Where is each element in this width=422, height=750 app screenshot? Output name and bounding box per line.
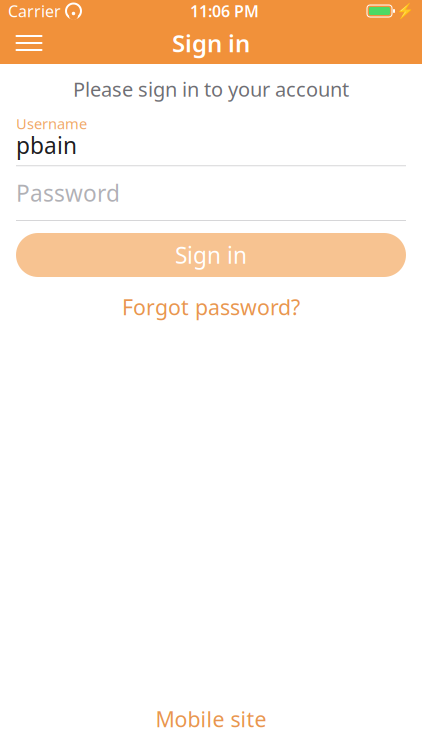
- button[interactable]: Forgot password?: [0, 287, 422, 327]
- staticText: Please sign in to your account: [73, 76, 349, 102]
- staticText: ⚡: [396, 3, 414, 19]
- staticText: Sign in: [172, 27, 250, 59]
- button[interactable]: Sign in: [16, 233, 406, 277]
- staticText: Mobile site: [155, 705, 266, 733]
- staticText: Username: [16, 114, 87, 133]
- button[interactable]: Menu: [7, 22, 51, 64]
- staticText: pbain: [16, 130, 77, 160]
- staticText: Sign in: [175, 240, 247, 270]
- staticText: 11:06 PM: [190, 0, 259, 22]
- button[interactable]: Mobile site: [0, 701, 422, 737]
- staticText: Carrier: [8, 0, 61, 22]
- staticText: Forgot password?: [122, 293, 300, 321]
- staticText: Password: [16, 178, 120, 208]
